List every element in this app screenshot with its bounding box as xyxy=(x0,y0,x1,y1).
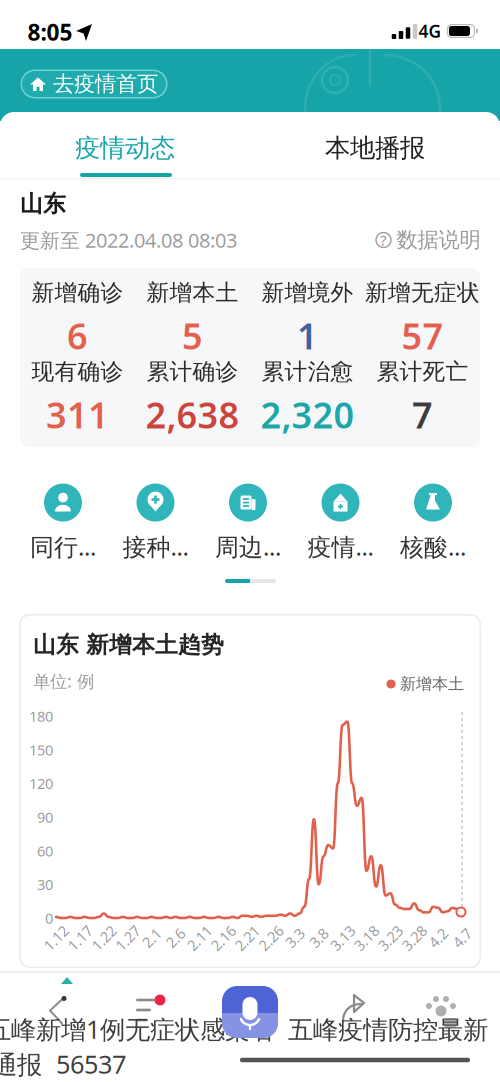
staticText: 新增无症状 xyxy=(365,279,480,306)
staticText: 疫情... xyxy=(307,531,373,562)
staticText: 新增本土 xyxy=(400,674,464,694)
staticText: 6 xyxy=(67,311,88,359)
button[interactable]: 周边... xyxy=(215,484,281,562)
staticText: 单位: 例 xyxy=(33,669,94,692)
staticText: 累计治愈 xyxy=(261,358,353,385)
staticText: 3.8 xyxy=(309,928,329,948)
staticText: 311 xyxy=(46,390,109,438)
staticText: 累计死亡 xyxy=(376,358,468,385)
button[interactable]: 疫情动态 xyxy=(0,126,250,170)
staticText: 2,320 xyxy=(260,390,354,438)
staticText: 1.12 xyxy=(42,928,70,948)
staticText: 通报 56537 xyxy=(0,1047,126,1081)
staticText: 2.26 xyxy=(257,928,285,948)
staticText: 1.27 xyxy=(114,928,142,948)
staticText: 3.23 xyxy=(376,928,404,948)
button[interactable]: 核酸... xyxy=(400,484,466,562)
staticText: 1.22 xyxy=(90,928,118,948)
button[interactable]: 去疫情首页 xyxy=(20,69,167,98)
staticText: 4G xyxy=(418,19,441,42)
staticText: 4.2 xyxy=(428,928,448,948)
staticText: 2.6 xyxy=(165,928,185,948)
staticText: 7 xyxy=(412,390,433,438)
staticText: 2.21 xyxy=(233,928,261,948)
staticText: 90 xyxy=(37,807,53,827)
staticText: 2.1 xyxy=(141,928,161,948)
staticText: 30 xyxy=(37,875,53,894)
button[interactable]: 本地播报 xyxy=(250,126,500,170)
staticText: 4.7 xyxy=(452,928,472,948)
button[interactable]: 接种... xyxy=(122,484,188,562)
staticText: 3.18 xyxy=(352,928,380,948)
staticText: 新增境外 xyxy=(261,279,353,306)
staticText: ? xyxy=(380,230,387,250)
button[interactable]: Menu xyxy=(136,996,168,1024)
staticText: 山东 xyxy=(20,190,66,218)
button[interactable]: 疫情... xyxy=(307,484,373,562)
staticText: 0 xyxy=(45,908,53,928)
staticText: 8:05 xyxy=(27,17,72,47)
staticText: 本地播报 xyxy=(325,132,425,163)
staticText: 疫情动态 xyxy=(75,132,175,163)
staticText: 核酸... xyxy=(400,531,466,562)
staticText: 周边... xyxy=(215,531,281,562)
staticText: 180 xyxy=(29,706,53,726)
staticText: 1.17 xyxy=(66,928,94,948)
staticText: 五峰新增1例无症状感染者 五峰疫情防控最新 xyxy=(0,1012,488,1046)
staticText: 新增确诊 xyxy=(31,279,123,306)
button[interactable]: More xyxy=(425,995,459,1021)
staticText: 去疫情首页 xyxy=(53,71,158,97)
staticText: 同行... xyxy=(30,531,96,562)
staticText: 3.13 xyxy=(329,928,357,948)
staticText: 更新至 2022.04.08 08:03 xyxy=(20,227,237,253)
button[interactable]: ? xyxy=(375,227,480,253)
staticText: 3.28 xyxy=(400,928,428,948)
staticText: 1 xyxy=(297,311,318,359)
staticText: 3.3 xyxy=(285,928,305,948)
staticText: 2,638 xyxy=(145,390,239,438)
staticText: 5 xyxy=(182,311,203,359)
button[interactable]: Voice search xyxy=(222,986,278,1038)
staticText: 数据说明 xyxy=(396,227,480,253)
staticText: 接种... xyxy=(122,531,188,562)
button[interactable]: Share xyxy=(341,994,371,1022)
staticText: 山东 新增本土趋势 xyxy=(33,631,224,659)
staticText: 120 xyxy=(29,774,53,793)
staticText: 2.11 xyxy=(185,928,213,948)
staticText: 2.16 xyxy=(209,928,237,948)
button[interactable]: Back xyxy=(49,997,65,1024)
staticText: 150 xyxy=(29,740,53,759)
button[interactable]: 同行... xyxy=(30,484,96,562)
staticText: 60 xyxy=(37,841,53,860)
staticText: 57 xyxy=(401,311,443,359)
staticText: 新增本土 xyxy=(146,279,238,306)
staticText: 累计确诊 xyxy=(146,358,238,385)
staticText: 现有确诊 xyxy=(31,358,123,385)
